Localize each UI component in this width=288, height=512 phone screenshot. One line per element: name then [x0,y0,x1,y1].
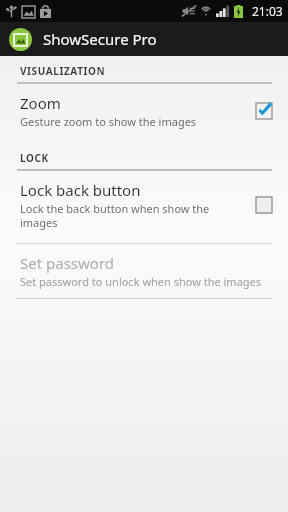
staticText: LOCK [20,151,49,165]
button[interactable]: Checked [254,101,274,121]
staticText: Set password to unlock when show the ima… [20,274,262,289]
button[interactable]: Lock back button [0,171,288,239]
staticText: Set password [20,253,115,273]
staticText: ShowSecure Pro [43,29,157,49]
staticText: Gesture zoom to show the images [20,114,197,129]
button[interactable]: ShowSecure Pro [0,22,288,56]
staticText: VISUALIZATION [20,64,106,78]
staticText: Lock the back button when show the image… [20,201,210,230]
staticText: 21:03 [252,3,283,19]
button[interactable]: Zoom [0,84,288,138]
button: Set password [0,244,288,298]
staticText: Lock back button [20,180,141,200]
button[interactable]: Unchecked [254,195,274,215]
staticText: Zoom [20,93,61,113]
